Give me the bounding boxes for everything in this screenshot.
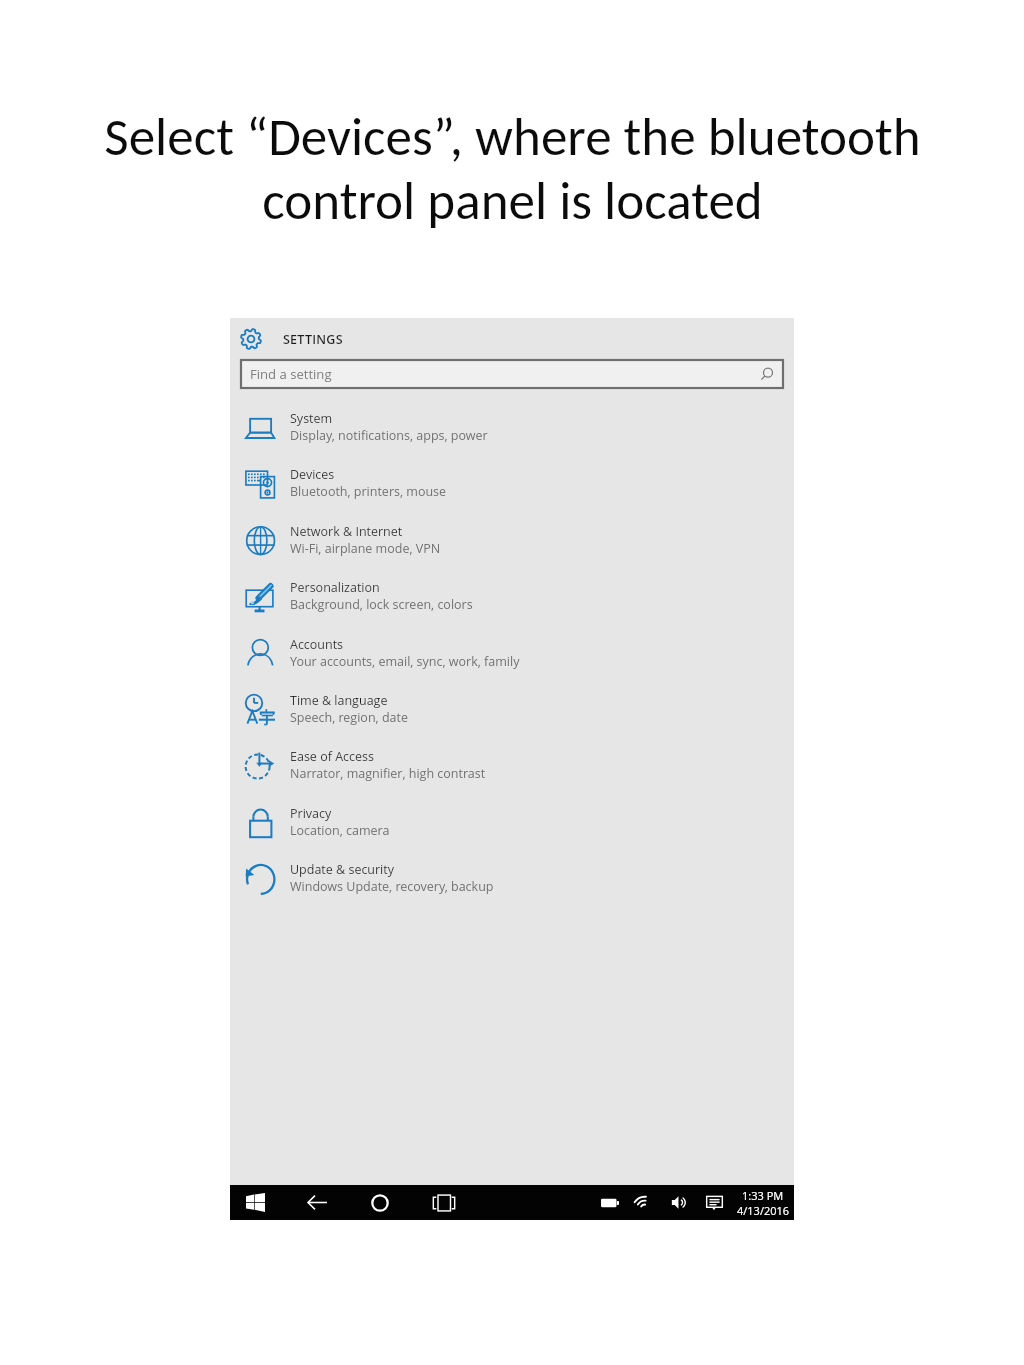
staticText: Find a setting — [250, 365, 332, 383]
staticText: Network & Internet — [290, 523, 403, 540]
button[interactable]: Notifications — [697, 1185, 731, 1220]
button[interactable]: Privacy — [230, 800, 794, 856]
button[interactable]: Personalization — [230, 574, 794, 630]
button[interactable]: Network & Internet — [230, 518, 794, 574]
button[interactable]: Home — [363, 1185, 397, 1220]
staticText: Devices — [290, 466, 335, 483]
button[interactable]: Find a setting — [241, 360, 783, 388]
button[interactable]: Start — [238, 1185, 272, 1220]
staticText: Location, camera — [290, 822, 390, 839]
staticText: Personalization — [290, 579, 380, 596]
staticText: Speech, region, date — [290, 709, 408, 726]
staticText: Narrator, magnifier, high contrast — [290, 765, 486, 782]
button[interactable]: Update & security — [230, 856, 794, 912]
staticText: Display, notifications, apps, power — [290, 427, 488, 444]
staticText: Background, lock screen, colors — [290, 596, 473, 613]
button[interactable]: Back — [300, 1185, 334, 1220]
button[interactable]: Time & language — [230, 687, 794, 743]
staticText: 4/13/2016 — [737, 1203, 790, 1218]
staticText: System — [290, 410, 333, 427]
staticText: Privacy — [290, 805, 332, 822]
button[interactable]: Accounts — [230, 631, 794, 687]
staticText: Accounts — [290, 636, 344, 653]
staticText: Update & security — [290, 861, 394, 878]
staticText: Windows Update, recovery, backup — [290, 878, 494, 895]
button[interactable]: Devices — [230, 461, 794, 517]
button[interactable]: Wi-Fi — [627, 1185, 661, 1220]
button[interactable]: System — [230, 405, 794, 461]
staticText: Time & language — [290, 692, 388, 709]
staticText: Select “Devices”, where the bluetooth co… — [104, 104, 921, 233]
staticText: Your accounts, email, sync, work, family — [290, 653, 520, 670]
staticText: Ease of Access — [290, 748, 374, 765]
button[interactable]: Ease of Access — [230, 743, 794, 799]
button[interactable]: Battery — [593, 1185, 627, 1220]
staticText: 1:33 PM — [742, 1188, 784, 1203]
staticText: Wi-Fi, airplane mode, VPN — [290, 540, 441, 557]
staticText: Bluetooth, printers, mouse — [290, 483, 447, 500]
staticText: SETTINGS — [283, 331, 343, 348]
button[interactable]: Task view — [427, 1185, 461, 1220]
button[interactable]: Volume — [662, 1185, 696, 1220]
